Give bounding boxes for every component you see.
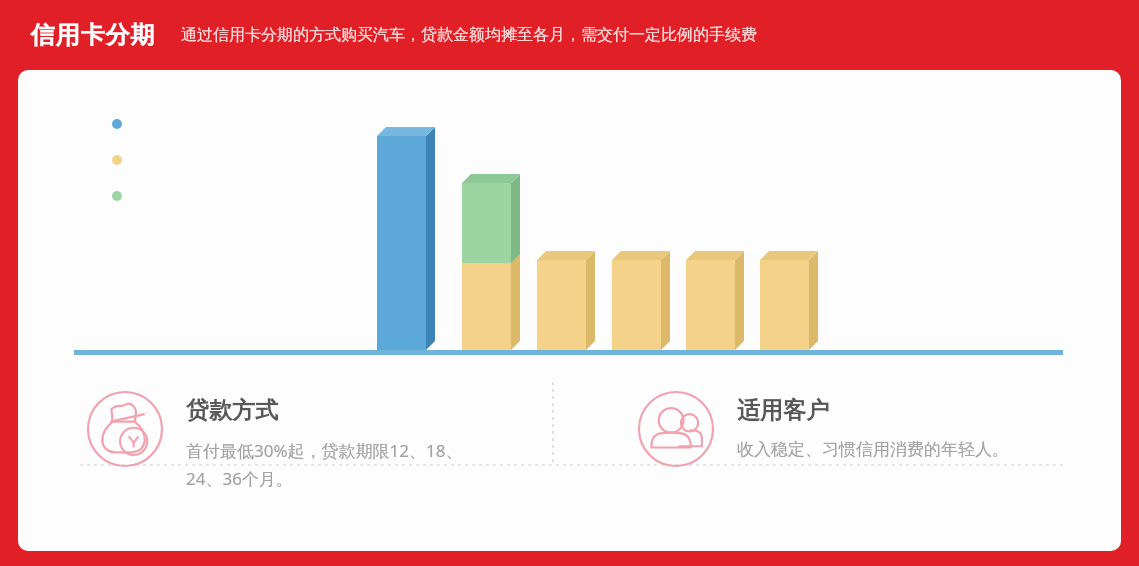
other: 适用客户 [637, 390, 715, 468]
staticText: 收入稳定、习惯信用消费的年轻人。 [737, 439, 1009, 460]
staticText: 适用客户 [737, 396, 829, 425]
other: 贷款方式 [86, 390, 164, 468]
staticText: 通过信用卡分期的方式购买汽车，贷款金额均摊至各月，需交付一定比例的手续费 [181, 25, 757, 45]
staticText: 信用卡分期 [30, 20, 155, 50]
button[interactable]: 贷款方式 [86, 390, 569, 551]
staticText: 首付最低30%起，贷款期限12、18、 24、36个月。 [186, 439, 463, 490]
staticText: 贷款方式 [186, 396, 278, 425]
button[interactable]: 适用客户 [637, 390, 1121, 551]
